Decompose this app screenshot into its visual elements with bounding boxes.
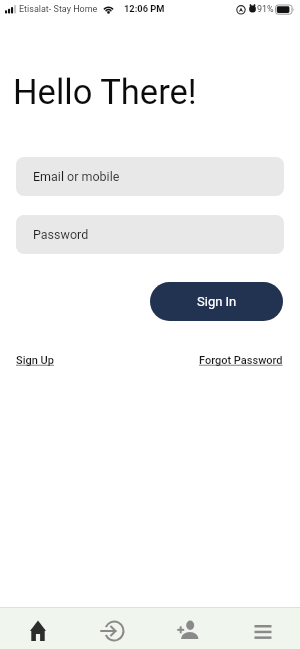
button[interactable]: Sign Up: [16, 354, 54, 367]
button[interactable]: Password: [16, 215, 284, 254]
staticText: Email or mobile: [33, 169, 120, 184]
staticText: Hello There!: [13, 72, 197, 112]
staticText: Password: [33, 227, 89, 242]
button[interactable]: [150, 608, 225, 649]
staticText: Etisalat- Stay Home: [19, 4, 98, 15]
staticText: 12:06 PM: [124, 3, 165, 14]
staticText: Sign In: [197, 294, 237, 309]
button[interactable]: [75, 608, 150, 649]
button[interactable]: Email or mobile: [16, 157, 284, 196]
button[interactable]: Sign In: [150, 282, 283, 321]
button[interactable]: [225, 608, 300, 649]
button[interactable]: Forgot Password: [199, 354, 283, 367]
staticText: 91%: [257, 4, 274, 15]
button[interactable]: [0, 608, 75, 649]
